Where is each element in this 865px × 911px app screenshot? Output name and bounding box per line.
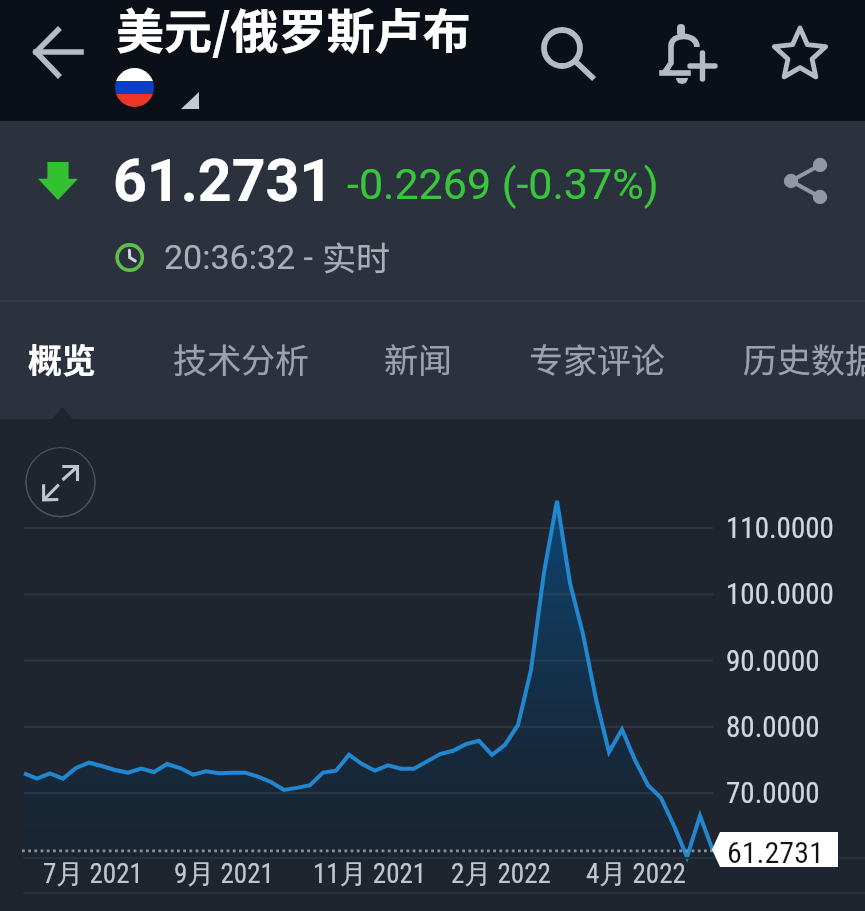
button[interactable]: Back <box>18 11 98 91</box>
staticText: 9月 2021 <box>174 857 274 891</box>
staticText: 11月 2021 <box>313 857 427 891</box>
staticText: 2月 2022 <box>451 857 551 891</box>
staticText: 4月 2022 <box>586 857 686 891</box>
button[interactable]: Add alert <box>652 4 752 104</box>
staticText: 美元/俄罗斯卢布 <box>116 0 471 63</box>
button[interactable]: 历史数据 <box>743 334 865 383</box>
button[interactable]: Expand chart <box>25 447 96 518</box>
staticText: 新闻 <box>384 334 452 383</box>
staticText: 100.0000 <box>726 577 834 611</box>
button[interactable]: 新闻 <box>384 334 452 383</box>
button[interactable]: Add to watchlist <box>760 4 860 104</box>
staticText: 实时 <box>322 232 390 281</box>
staticText: 61.2731 <box>727 835 824 870</box>
button[interactable]: 技术分析 <box>173 334 309 383</box>
button[interactable]: Search <box>514 4 614 104</box>
staticText: 专家评论 <box>529 334 665 383</box>
staticText: -0.2269 (-0.37%) <box>347 159 659 209</box>
button[interactable]: 专家评论 <box>529 334 665 383</box>
staticText: 61.2731 <box>113 146 334 215</box>
staticText: 7月 2021 <box>43 857 143 891</box>
staticText: 技术分析 <box>173 334 309 383</box>
staticText: 110.0000 <box>726 511 834 545</box>
staticText: 历史数据 <box>743 334 865 383</box>
staticText: 20:36:32 - <box>164 237 322 277</box>
staticText: 70.0000 <box>726 776 820 810</box>
staticText: 90.0000 <box>726 644 820 678</box>
staticText: 80.0000 <box>726 710 820 744</box>
staticText: 概览 <box>28 334 96 383</box>
button[interactable]: Share <box>776 137 846 207</box>
button[interactable]: 概览 <box>28 334 96 383</box>
